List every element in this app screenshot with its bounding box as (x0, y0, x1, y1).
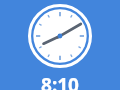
staticText: 8:10 (41, 72, 79, 90)
button[interactable]: Analog clock showing 8:10 (28, 4, 92, 68)
